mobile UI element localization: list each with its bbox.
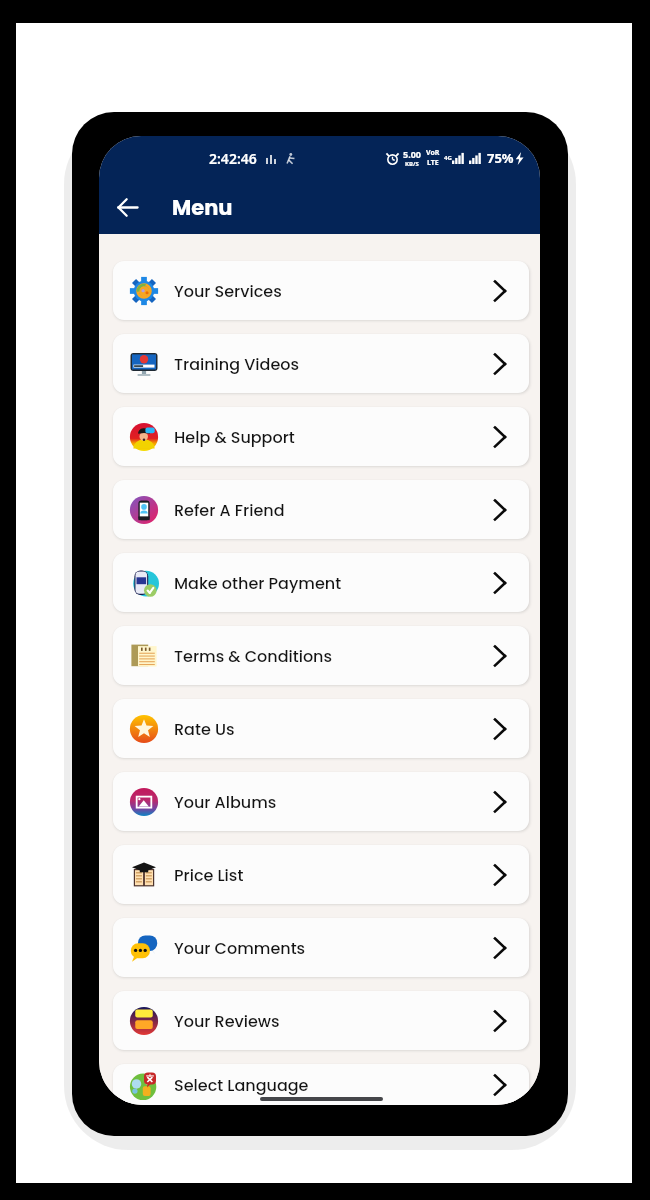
staticText: Your Albums bbox=[174, 791, 277, 813]
staticText: Refer A Friend bbox=[174, 499, 285, 521]
button[interactable]: Your Comments bbox=[113, 918, 529, 977]
button[interactable]: Back bbox=[105, 185, 149, 229]
staticText: Help & Support bbox=[174, 426, 295, 448]
button[interactable]: Your Reviews bbox=[113, 991, 529, 1050]
button[interactable]: Your Albums bbox=[113, 772, 529, 831]
staticText: LTE bbox=[427, 158, 439, 168]
staticText: Make other Payment bbox=[174, 572, 342, 594]
staticText: Price List bbox=[174, 864, 244, 886]
button[interactable]: Make other Payment bbox=[113, 553, 529, 612]
staticText: KB/S bbox=[405, 160, 419, 168]
button[interactable]: Refer A Friend bbox=[113, 480, 529, 539]
staticText: VoR bbox=[426, 148, 440, 158]
staticText: 4G bbox=[444, 154, 452, 162]
staticText: 2:42:46 bbox=[209, 149, 257, 168]
staticText: 5.00 bbox=[403, 148, 421, 160]
staticText: Rate Us bbox=[174, 718, 235, 740]
button[interactable]: Terms & Conditions bbox=[113, 626, 529, 685]
button[interactable]: Your Services bbox=[113, 261, 529, 320]
button[interactable]: Training Videos bbox=[113, 334, 529, 393]
button[interactable]: Price List bbox=[113, 845, 529, 904]
staticText: Terms & Conditions bbox=[174, 645, 333, 667]
button[interactable]: Rate Us bbox=[113, 699, 529, 758]
staticText: 75% bbox=[487, 149, 514, 167]
staticText: Training Videos bbox=[174, 353, 300, 375]
button[interactable]: Select Language bbox=[113, 1064, 529, 1105]
staticText: Select Language bbox=[174, 1074, 309, 1096]
button[interactable]: Help & Support bbox=[113, 407, 529, 466]
staticText: Menu bbox=[172, 193, 233, 222]
staticText: Your Comments bbox=[174, 937, 306, 959]
staticText: Your Reviews bbox=[174, 1010, 280, 1032]
staticText: Your Services bbox=[174, 280, 282, 302]
